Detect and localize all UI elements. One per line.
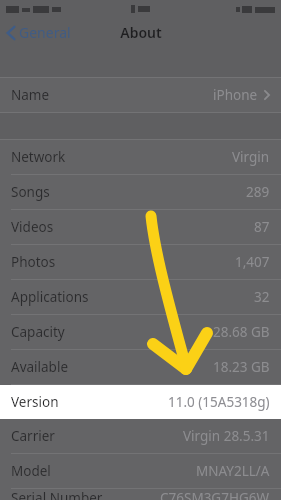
staticText: 28.68 GB: [213, 323, 270, 341]
button[interactable]: Available: [0, 350, 281, 385]
staticText: Photos: [11, 253, 56, 271]
staticText: Name: [11, 86, 50, 104]
button[interactable]: Songs: [0, 175, 281, 210]
staticText: About: [120, 23, 162, 42]
button[interactable]: Serial Number: [0, 489, 281, 500]
staticText: Videos: [11, 218, 54, 236]
button[interactable]: General: [0, 19, 79, 46]
button[interactable]: Name: [0, 78, 281, 112]
staticText: C76SM3G7HG6W: [160, 489, 270, 500]
staticText: Applications: [11, 288, 89, 306]
staticText: 289: [246, 183, 270, 201]
staticText: Songs: [11, 183, 50, 201]
staticText: Virgin 28.5.31: [183, 427, 270, 445]
button[interactable]: Applications: [0, 280, 281, 315]
staticText: General: [19, 23, 71, 42]
button[interactable]: Version: [0, 385, 281, 419]
staticText: MNAY2LL/A: [196, 462, 270, 480]
button[interactable]: Model: [0, 454, 281, 489]
staticText: Version: [11, 393, 59, 411]
button[interactable]: Photos: [0, 245, 281, 280]
staticText: Model: [11, 462, 51, 480]
staticText: 18.23 GB: [213, 358, 270, 376]
staticText: Capacity: [11, 323, 65, 341]
staticText: Carrier: [11, 427, 55, 445]
staticText: Virgin: [232, 148, 270, 166]
button[interactable]: Carrier: [0, 419, 281, 454]
staticText: 32: [254, 288, 270, 306]
staticText: Available: [11, 358, 68, 376]
button[interactable]: Network: [0, 140, 281, 175]
other: Arrow pointing at Version row: [0, 0, 281, 500]
staticText: 87: [254, 218, 270, 236]
staticText: Network: [11, 148, 66, 166]
staticText: Serial Number: [11, 489, 103, 500]
staticText: 1,407: [235, 253, 270, 271]
button[interactable]: Capacity: [0, 315, 281, 350]
button[interactable]: Videos: [0, 210, 281, 245]
staticText: iPhone: [213, 86, 258, 104]
staticText: 11.0 (15A5318g): [168, 393, 270, 411]
